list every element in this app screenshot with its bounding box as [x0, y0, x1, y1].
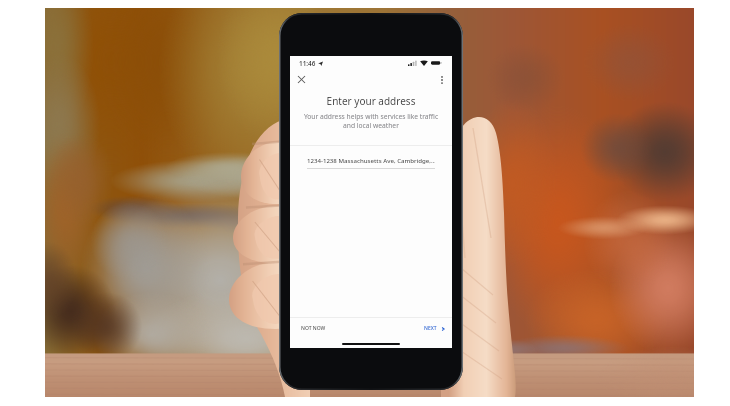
button[interactable]: More options — [434, 72, 449, 87]
button[interactable]: Close — [294, 72, 309, 87]
staticText: NEXT — [424, 325, 437, 332]
staticText: Enter your address — [290, 94, 452, 108]
button[interactable]: NOT NOW — [290, 325, 371, 332]
staticText: 11:46 — [299, 59, 316, 68]
button[interactable]: 1234-1238 Massachusetts Ave, Cambridge,.… — [307, 156, 435, 169]
button[interactable]: NEXT — [371, 325, 452, 332]
staticText: Your address helps with services like tr… — [290, 112, 452, 130]
staticText: NOT NOW — [301, 325, 326, 332]
staticText: 1234-1238 Massachusetts Ave, Cambridge,.… — [307, 156, 435, 164]
